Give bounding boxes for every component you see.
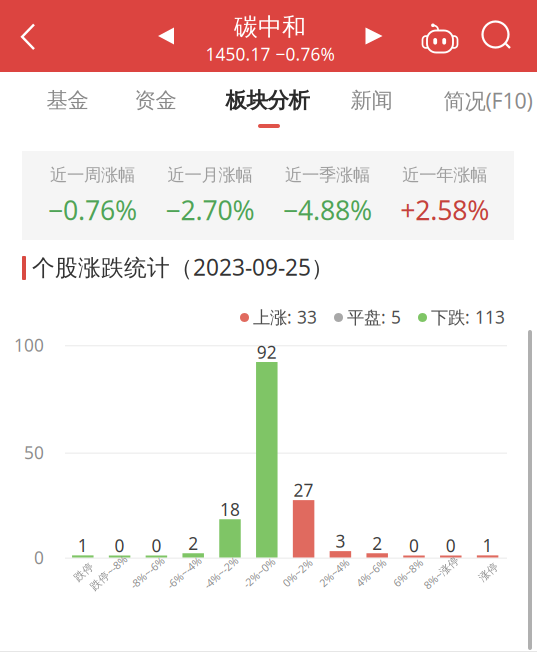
- staticText: 近一季涨幅: [285, 164, 370, 186]
- button[interactable]: 资金: [0, 0, 120, 25]
- button[interactable]: 个股: [0, 0, 120, 25]
- staticText: 0: [115, 534, 125, 557]
- button[interactable]: Next stock: [0, 0, 36, 32]
- button[interactable]: Previous stock: [0, 0, 36, 32]
- staticText: 0: [446, 534, 456, 557]
- staticText: 0: [151, 534, 161, 557]
- staticText: 平盘: 5: [347, 305, 401, 328]
- staticText: 4%~6%: [353, 565, 389, 580]
- staticText: −4.88%: [283, 192, 372, 228]
- staticText: 100: [14, 333, 44, 356]
- staticText: 92: [257, 340, 277, 363]
- staticText: -8%~-6%: [126, 565, 168, 580]
- staticText: 板块分析: [225, 87, 309, 114]
- staticText: 个股涨跌统计（2023-09-25）: [32, 252, 334, 282]
- button[interactable]: 板块分析: [0, 0, 120, 25]
- staticText: −2.70%: [165, 192, 254, 228]
- button[interactable]: 基金: [0, 0, 120, 25]
- staticText: 碳中和: [234, 12, 306, 42]
- staticText: 0: [409, 534, 419, 557]
- staticText: 8%~涨停: [420, 565, 463, 580]
- staticText: 2%~4%: [316, 565, 352, 580]
- staticText: 2: [372, 532, 382, 555]
- staticText: 近一年涨幅: [402, 164, 487, 186]
- staticText: 基金: [46, 87, 88, 114]
- staticText: 跌停~-8%: [86, 565, 132, 580]
- button[interactable]: AI assistant: [0, 0, 44, 44]
- staticText: 0%~2%: [280, 565, 316, 580]
- staticText: -4%~-2%: [200, 565, 242, 580]
- button[interactable]: Back: [0, 0, 46, 44]
- button[interactable]: Search: [0, 0, 46, 44]
- staticText: 27: [294, 479, 314, 502]
- button[interactable]: 简况(F10): [0, 0, 120, 25]
- staticText: 6%~8%: [390, 565, 426, 580]
- staticText: 涨停: [478, 565, 500, 579]
- staticText: 近一周涨幅: [50, 164, 135, 186]
- staticText: 3: [335, 530, 345, 553]
- staticText: -2%~0%: [240, 565, 279, 580]
- staticText: 1: [483, 534, 493, 557]
- staticText: 0: [34, 546, 44, 569]
- staticText: 跌停: [73, 565, 95, 579]
- button[interactable]: 新闻: [0, 0, 120, 25]
- staticText: 资金: [134, 87, 176, 114]
- staticText: 下跌: 113: [431, 305, 505, 328]
- staticText: 2: [188, 532, 198, 555]
- staticText: 1450.17 −0.76%: [205, 42, 334, 65]
- staticText: 新闻: [350, 87, 392, 114]
- staticText: +2.58%: [400, 192, 489, 228]
- staticText: -6%~-4%: [163, 565, 205, 580]
- staticText: 近一月涨幅: [167, 164, 252, 186]
- staticText: 上涨: 33: [253, 305, 317, 328]
- staticText: −0.76%: [48, 192, 137, 228]
- staticText: 50: [24, 441, 44, 464]
- staticText: 简况(F10): [443, 86, 532, 115]
- staticText: 18: [220, 498, 240, 521]
- staticText: 1: [78, 534, 88, 557]
